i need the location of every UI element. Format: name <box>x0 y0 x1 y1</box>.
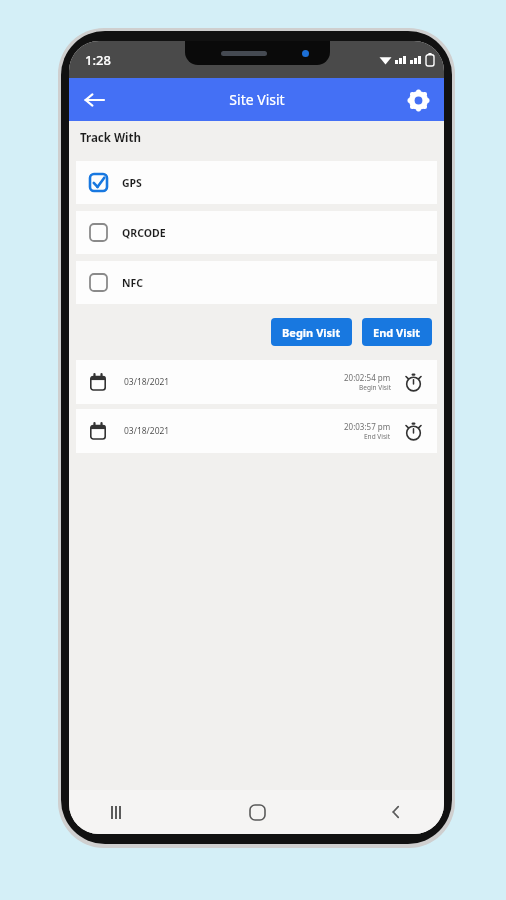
button[interactable]: Back <box>376 792 416 832</box>
button[interactable]: 03/18/2021 <box>76 409 437 453</box>
button[interactable]: QRCODE <box>76 211 437 254</box>
staticText: NFC <box>122 276 144 290</box>
staticText: 1:28 <box>85 51 111 69</box>
staticText: 03/18/2021 <box>124 425 170 437</box>
button[interactable]: Settings <box>400 82 436 118</box>
button[interactable]: Begin Visit <box>271 318 352 346</box>
button[interactable]: Home <box>237 792 277 832</box>
staticText: 03/18/2021 <box>124 376 170 388</box>
staticText: 20:02:54 pm <box>344 372 391 383</box>
button[interactable]: Recents <box>97 792 137 832</box>
button[interactable]: NFC <box>76 261 437 304</box>
staticText: End Visit <box>373 325 421 340</box>
staticText: Begin Visit <box>359 383 391 392</box>
staticText: Begin Visit <box>282 325 341 340</box>
staticText: QRCODE <box>122 226 166 240</box>
button[interactable]: 03/18/2021 <box>76 360 437 404</box>
staticText: GPS <box>122 176 142 190</box>
staticText: End Visit <box>364 432 391 441</box>
button[interactable]: End Visit <box>362 318 432 346</box>
button[interactable]: GPS <box>76 161 437 204</box>
staticText: Site Visit <box>229 90 285 109</box>
staticText: Track With <box>80 130 141 146</box>
button[interactable]: Back <box>75 81 113 119</box>
staticText: 20:03:57 pm <box>344 421 391 432</box>
